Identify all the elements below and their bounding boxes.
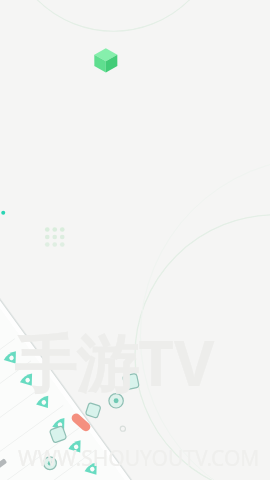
button[interactable]: WiFi app promotional screen	[0, 0, 270, 480]
